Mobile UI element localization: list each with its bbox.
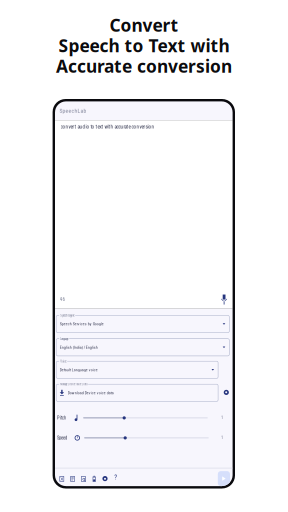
staticText: ?	[114, 473, 117, 481]
staticText: Pitch	[57, 415, 66, 420]
button[interactable]: Speech Services by Google	[54, 315, 234, 339]
button[interactable]: Find	[78, 468, 89, 486]
staticText: 46	[59, 296, 65, 302]
staticText: Voice	[60, 360, 66, 363]
button[interactable]: Battery	[89, 468, 100, 486]
staticText: convert audio to text with accurate conv…	[60, 124, 154, 130]
staticText: Default Language voice	[60, 367, 98, 372]
staticText: Download Device voice data	[68, 390, 114, 395]
button[interactable]: Copy	[67, 468, 78, 486]
staticText: Accurate conversion	[56, 54, 232, 77]
staticText: Speed	[57, 435, 67, 440]
button[interactable]: Cut	[56, 468, 67, 486]
button[interactable]: English (India) / English	[54, 339, 234, 361]
staticText: 1	[221, 435, 223, 440]
staticText: Manage Device Voice Data	[60, 383, 87, 386]
button[interactable]: Settings	[100, 468, 110, 486]
staticText: 1	[221, 415, 223, 420]
staticText: SpeechLab	[59, 107, 86, 114]
staticText: Language	[60, 337, 68, 341]
staticText: Speech Engine	[60, 314, 74, 317]
staticText: English (India) / English	[60, 345, 98, 350]
button[interactable]: Download Device voice data	[54, 384, 234, 405]
staticText: Convert	[109, 13, 178, 36]
button[interactable]: Help	[110, 471, 121, 483]
staticText: Speech to Text with	[58, 34, 229, 57]
button[interactable]: Record voice	[219, 293, 229, 305]
staticText: Speech Services by Google	[60, 322, 104, 326]
button[interactable]: Play	[218, 471, 230, 486]
button[interactable]: Default Language voice	[54, 361, 234, 384]
